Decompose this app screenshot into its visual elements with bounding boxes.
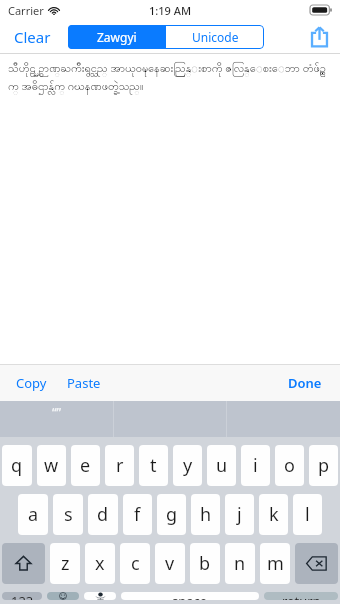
button[interactable]: Copy bbox=[10, 369, 53, 397]
staticText: h bbox=[200, 502, 212, 527]
staticText: Copy bbox=[16, 374, 47, 392]
button[interactable]: r bbox=[105, 445, 134, 486]
staticText: 123 bbox=[11, 592, 34, 600]
button[interactable]: q bbox=[2, 445, 32, 486]
button[interactable]: v bbox=[155, 543, 185, 584]
staticText: q bbox=[11, 453, 23, 478]
staticText: k bbox=[269, 502, 279, 527]
button[interactable]: o bbox=[275, 445, 304, 486]
button[interactable]: 123 bbox=[2, 592, 42, 600]
button[interactable]: i bbox=[241, 445, 270, 486]
staticText: space bbox=[172, 592, 208, 600]
staticText: Paste bbox=[67, 374, 101, 392]
button[interactable]: j bbox=[225, 494, 254, 535]
button[interactable]: n bbox=[225, 543, 255, 584]
button[interactable]: Unicode bbox=[166, 25, 264, 49]
staticText: Unicode bbox=[192, 29, 239, 45]
button[interactable]: d bbox=[88, 494, 118, 535]
staticText: w bbox=[44, 453, 59, 478]
staticText: i bbox=[253, 453, 258, 478]
button[interactable]: Zawgyi bbox=[68, 25, 166, 49]
button[interactable]: c bbox=[120, 543, 150, 584]
button[interactable]: s bbox=[53, 494, 83, 535]
staticText: Done bbox=[288, 374, 322, 392]
staticText: c bbox=[131, 551, 140, 576]
button[interactable]: y bbox=[173, 445, 202, 486]
staticText: y bbox=[183, 453, 193, 478]
staticText: l bbox=[305, 502, 310, 527]
staticText: g bbox=[166, 502, 178, 527]
button[interactable]: u bbox=[207, 445, 236, 486]
button[interactable]: Backspace bbox=[295, 543, 338, 584]
staticText: Clear bbox=[14, 27, 51, 47]
staticText: f bbox=[134, 502, 141, 527]
staticText: d bbox=[97, 502, 109, 527]
staticText: “” bbox=[52, 404, 62, 420]
button[interactable]: Share bbox=[307, 22, 332, 51]
button[interactable]: l bbox=[293, 494, 322, 535]
button[interactable]: return bbox=[264, 592, 338, 600]
button[interactable]: Shift bbox=[2, 543, 45, 584]
staticText: n bbox=[234, 551, 246, 576]
button[interactable]: g bbox=[157, 494, 186, 535]
staticText: z bbox=[61, 551, 70, 576]
button[interactable]: e bbox=[71, 445, 100, 486]
button[interactable]: f bbox=[123, 494, 152, 535]
staticText: သီဟိုဠ္မွ ဉာဏ္ႀကီးရွင္သည္ အာယုဝဍ္ဎနေဆးညြ… bbox=[8, 60, 332, 96]
button[interactable]: a bbox=[18, 494, 48, 535]
button[interactable]: h bbox=[191, 494, 220, 535]
staticText: return bbox=[282, 592, 321, 600]
staticText: m bbox=[267, 551, 284, 576]
button[interactable]: m bbox=[260, 543, 290, 584]
button[interactable]: Done bbox=[282, 369, 328, 397]
staticText: 1:19 AM bbox=[149, 3, 192, 18]
staticText: b bbox=[199, 551, 211, 576]
staticText: e bbox=[80, 453, 91, 478]
staticText: t bbox=[150, 453, 157, 478]
staticText: o bbox=[284, 453, 295, 478]
button[interactable]: w bbox=[37, 445, 66, 486]
staticText: j bbox=[237, 502, 242, 527]
button[interactable]: b bbox=[190, 543, 220, 584]
button[interactable]: Paste bbox=[61, 369, 107, 397]
staticText: r bbox=[116, 453, 124, 478]
button[interactable]: x bbox=[85, 543, 115, 584]
staticText: p bbox=[318, 453, 330, 478]
button[interactable]: k bbox=[259, 494, 288, 535]
button[interactable]: t bbox=[139, 445, 168, 486]
staticText: u bbox=[216, 453, 228, 478]
staticText: a bbox=[28, 502, 39, 527]
staticText: s bbox=[64, 502, 73, 527]
button[interactable]: p bbox=[309, 445, 338, 486]
button[interactable]: Dictation bbox=[84, 592, 116, 600]
button[interactable]: Clear bbox=[6, 23, 59, 51]
staticText: x bbox=[95, 551, 105, 576]
staticText: v bbox=[165, 551, 175, 576]
button[interactable]: space bbox=[121, 592, 259, 600]
button[interactable]: သီဟိုဠ္မွ ဉာဏ္ႀကီးရွင္သည္ အာယုဝဍ္ဎနေဆးညြ… bbox=[0, 54, 340, 364]
staticText: Zawgyi bbox=[97, 29, 137, 45]
staticText: Carrier bbox=[8, 3, 44, 18]
button[interactable]: “” bbox=[0, 401, 114, 437]
button[interactable]: z bbox=[50, 543, 80, 584]
button[interactable]: Emoji bbox=[47, 592, 79, 600]
